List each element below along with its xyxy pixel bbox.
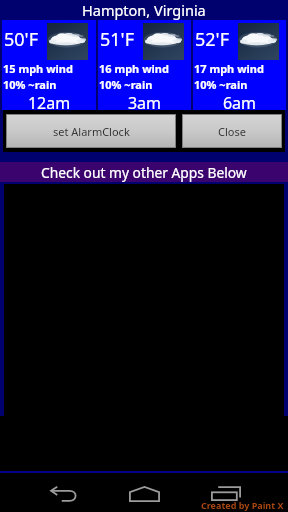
staticText: set AlarmClock — [53, 124, 130, 139]
button[interactable]: Back — [23, 475, 104, 512]
staticText: 3am — [98, 92, 191, 114]
staticText: 6am — [193, 92, 286, 114]
staticText: 52'F — [195, 27, 229, 52]
button[interactable]: 52'F — [193, 20, 286, 110]
button[interactable]: Check out my other Apps Below — [0, 162, 288, 182]
button[interactable]: set AlarmClock — [7, 115, 175, 147]
staticText: 10% ~rain — [194, 77, 248, 92]
staticText: Close — [218, 124, 246, 139]
staticText: 50'F — [4, 27, 38, 52]
button[interactable]: 50'F — [2, 20, 96, 110]
staticText: Created by Paint X — [201, 499, 284, 511]
button[interactable]: 51'F — [98, 20, 191, 110]
staticText: 51'F — [100, 27, 134, 52]
staticText: 15 mph wind — [3, 61, 73, 76]
staticText: Check out my other Apps Below — [41, 163, 247, 182]
button[interactable]: Close — [183, 115, 281, 147]
staticText: 17 mph wind — [194, 61, 264, 76]
staticText: 16 mph wind — [99, 61, 169, 76]
staticText: 12am — [2, 92, 96, 114]
button[interactable]: Recent apps — [185, 475, 266, 512]
staticText: 10% ~rain — [99, 77, 153, 92]
staticText: Hampton, Virginia — [82, 0, 206, 20]
button[interactable]: Home — [104, 475, 185, 512]
staticText: 10% ~rain — [3, 77, 57, 92]
